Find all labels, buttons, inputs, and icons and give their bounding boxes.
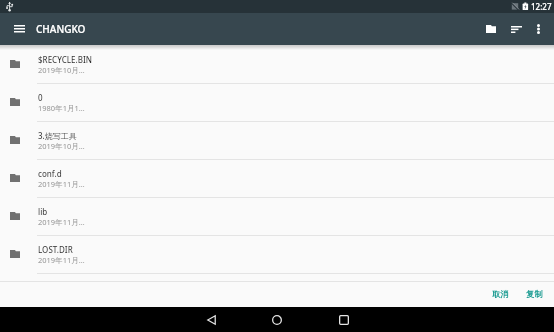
staticText: 2019年10月… — [38, 141, 85, 151]
button[interactable]: 3.烧写工具 — [0, 121, 554, 159]
staticText: lib — [38, 206, 48, 217]
staticText: 取消 — [492, 289, 509, 299]
staticText: 0 — [38, 92, 43, 103]
button[interactable]: 0 — [0, 83, 554, 121]
staticText: 2019年10月… — [38, 65, 85, 75]
button[interactable]: Navigation menu — [7, 17, 31, 41]
button[interactable]: Back — [186, 307, 236, 332]
button[interactable]: Recent apps — [319, 307, 369, 332]
button[interactable]: LOST.DIR — [0, 235, 554, 273]
button[interactable]: New folder — [479, 17, 503, 41]
button[interactable]: 取消 — [484, 281, 516, 307]
button[interactable]: 复制 — [518, 281, 550, 307]
staticText: 12:27 — [531, 1, 552, 12]
staticText: 复制 — [526, 289, 543, 299]
staticText: LOST.DIR — [38, 244, 73, 255]
staticText: conf.d — [38, 168, 62, 179]
button[interactable]: Home — [252, 307, 302, 332]
staticText: $RECYCLE.BIN — [38, 54, 92, 65]
staticText: 2019年11月… — [38, 179, 85, 189]
staticText: CHANGKO — [36, 22, 86, 36]
staticText: 2019年11月… — [38, 217, 85, 227]
staticText: 1980年1月1… — [38, 103, 85, 113]
staticText: 3.烧写工具 — [38, 130, 77, 141]
button[interactable]: More options — [526, 17, 550, 41]
button[interactable]: lib — [0, 197, 554, 235]
button[interactable]: $RECYCLE.BIN — [0, 45, 554, 83]
staticText: 2019年11月… — [38, 255, 85, 265]
button[interactable]: conf.d — [0, 159, 554, 197]
button[interactable]: Sort — [504, 17, 528, 41]
